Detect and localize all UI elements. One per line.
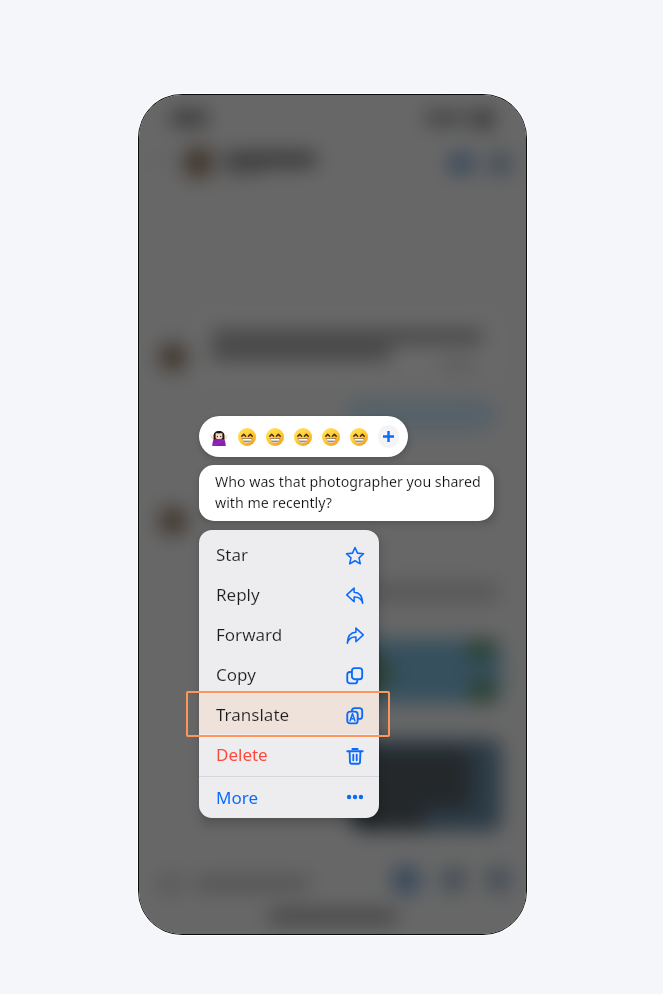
staticText: Star <box>216 543 249 566</box>
staticText: Translate <box>216 703 290 726</box>
button[interactable]: Star <box>199 534 379 574</box>
button[interactable]: Delete <box>199 734 379 774</box>
staticText: Delete <box>216 743 268 766</box>
staticText: Forward <box>216 623 283 646</box>
button[interactable]: React with grin <box>238 428 266 446</box>
button[interactable]: Add reaction <box>378 425 399 448</box>
button[interactable]: React with grin <box>350 428 378 446</box>
button[interactable]: React with no gesture <box>210 428 238 446</box>
button[interactable]: React with grin <box>294 428 322 446</box>
button[interactable]: React with grin <box>266 428 294 446</box>
button[interactable]: Forward <box>199 614 379 654</box>
staticText: More <box>216 786 258 809</box>
button[interactable]: React with grin <box>322 428 350 446</box>
staticText: Who was that photographer you shared wit… <box>215 472 481 512</box>
staticText: Copy <box>216 663 256 686</box>
staticText: Reply <box>216 583 260 606</box>
button[interactable]: Translate <box>199 694 379 734</box>
button[interactable]: More <box>199 777 379 817</box>
button[interactable]: Copy <box>199 654 379 694</box>
button[interactable]: Reply <box>199 574 379 614</box>
